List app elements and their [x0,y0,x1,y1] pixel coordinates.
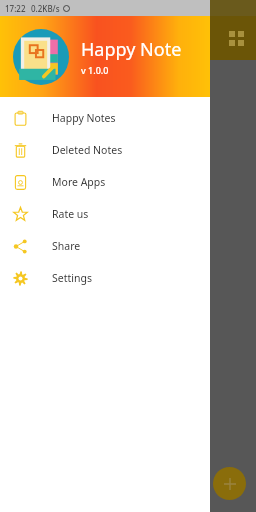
button[interactable]: Add note [213,467,246,500]
button[interactable]: Rate us [0,198,210,230]
button[interactable]: Deleted Notes [0,134,210,166]
button[interactable]: Happy Notes [0,102,210,134]
staticText: Happy Note [81,37,182,62]
staticText: Share [52,239,81,253]
button[interactable]: Grid view [222,24,250,52]
button[interactable]: Share [0,230,210,262]
staticText: 17:22 [5,3,26,14]
button[interactable]: Settings [0,262,210,294]
staticText: v 1.0.0 [81,64,109,76]
staticText: 0.2KB/s [31,3,60,14]
staticText: Deleted Notes [52,143,123,157]
staticText: More Apps [52,175,106,189]
button[interactable]: More Apps [0,166,210,198]
staticText: Rate us [52,207,89,221]
staticText: Settings [52,271,92,285]
staticText: Happy Notes [52,111,116,125]
